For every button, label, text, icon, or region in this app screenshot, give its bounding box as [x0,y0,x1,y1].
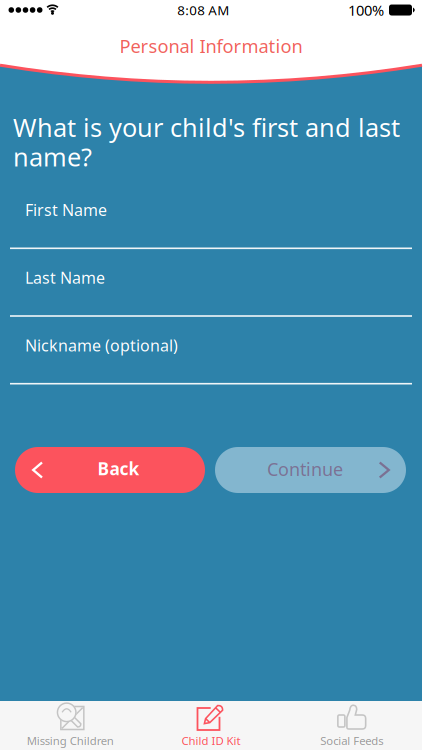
staticText: Nickname (optional) [25,334,178,356]
staticText: What is your child's first and last name… [13,110,400,174]
staticText: Missing Children [27,733,114,748]
button[interactable]: Social Feeds [281,701,422,750]
staticText: Social Feeds [320,733,383,748]
staticText: Child ID Kit [181,733,240,748]
staticText: 100% [348,0,384,20]
button[interactable]: Continue [215,447,406,493]
button[interactable]: Missing Children [0,701,141,750]
staticText: Personal Information [119,34,302,58]
button[interactable]: Back [15,447,205,493]
staticText: Continue [267,457,343,481]
staticText: 8:08 AM [177,1,229,19]
staticText: Last Name [25,267,105,288]
staticText: First Name [25,199,107,221]
button[interactable]: Child ID Kit [141,701,281,750]
staticText: Back [97,457,139,480]
